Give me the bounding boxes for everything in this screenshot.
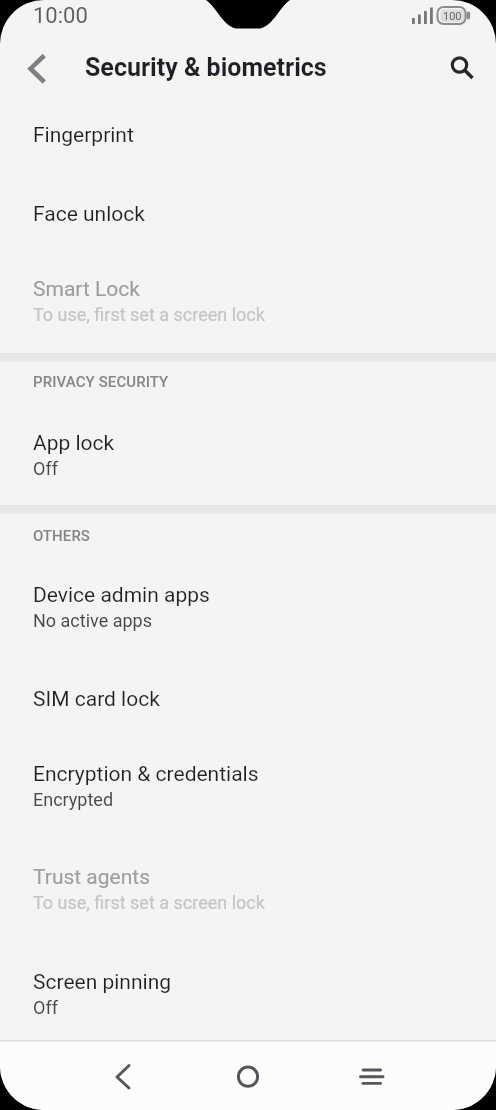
button[interactable]: Smart Lock: [0, 250, 496, 351]
button[interactable]: App lock: [0, 401, 496, 508]
button[interactable]: Trust agents: [0, 834, 496, 943]
button[interactable]: Fingerprint: [0, 98, 496, 172]
button[interactable]: [100, 1052, 148, 1100]
button[interactable]: [14, 45, 62, 93]
button[interactable]: Device admin apps: [0, 554, 496, 659]
staticText: OTHERS: [33, 527, 91, 545]
button[interactable]: SIM card lock: [0, 662, 496, 736]
staticText: Smart Lock: [33, 277, 140, 302]
button[interactable]: [224, 1052, 272, 1100]
staticText: Encrypted: [33, 789, 114, 810]
staticText: No active apps: [33, 610, 152, 631]
button[interactable]: [434, 44, 482, 92]
button[interactable]: Screen pinning: [0, 940, 496, 1047]
staticText: 100: [443, 10, 462, 23]
staticText: PRIVACY SECURITY: [33, 373, 169, 391]
staticText: Face unlock: [33, 202, 145, 227]
staticText: Trust agents: [33, 865, 151, 890]
staticText: SIM card lock: [33, 687, 160, 712]
staticText: Off: [33, 458, 58, 479]
button[interactable]: Face unlock: [0, 175, 496, 254]
button[interactable]: [347, 1052, 395, 1100]
staticText: Screen pinning: [33, 970, 172, 995]
staticText: Device admin apps: [33, 583, 210, 608]
staticText: To use, first set a screen lock: [33, 304, 265, 325]
staticText: App lock: [33, 431, 115, 456]
staticText: Off: [33, 997, 58, 1018]
staticText: To use, first set a screen lock: [33, 892, 265, 913]
staticText: 10:00: [33, 3, 88, 29]
staticText: Security & biometrics: [85, 53, 327, 82]
staticText: Encryption & credentials: [33, 762, 259, 787]
button[interactable]: Encryption & credentials: [0, 732, 496, 840]
staticText: Fingerprint: [33, 123, 134, 148]
